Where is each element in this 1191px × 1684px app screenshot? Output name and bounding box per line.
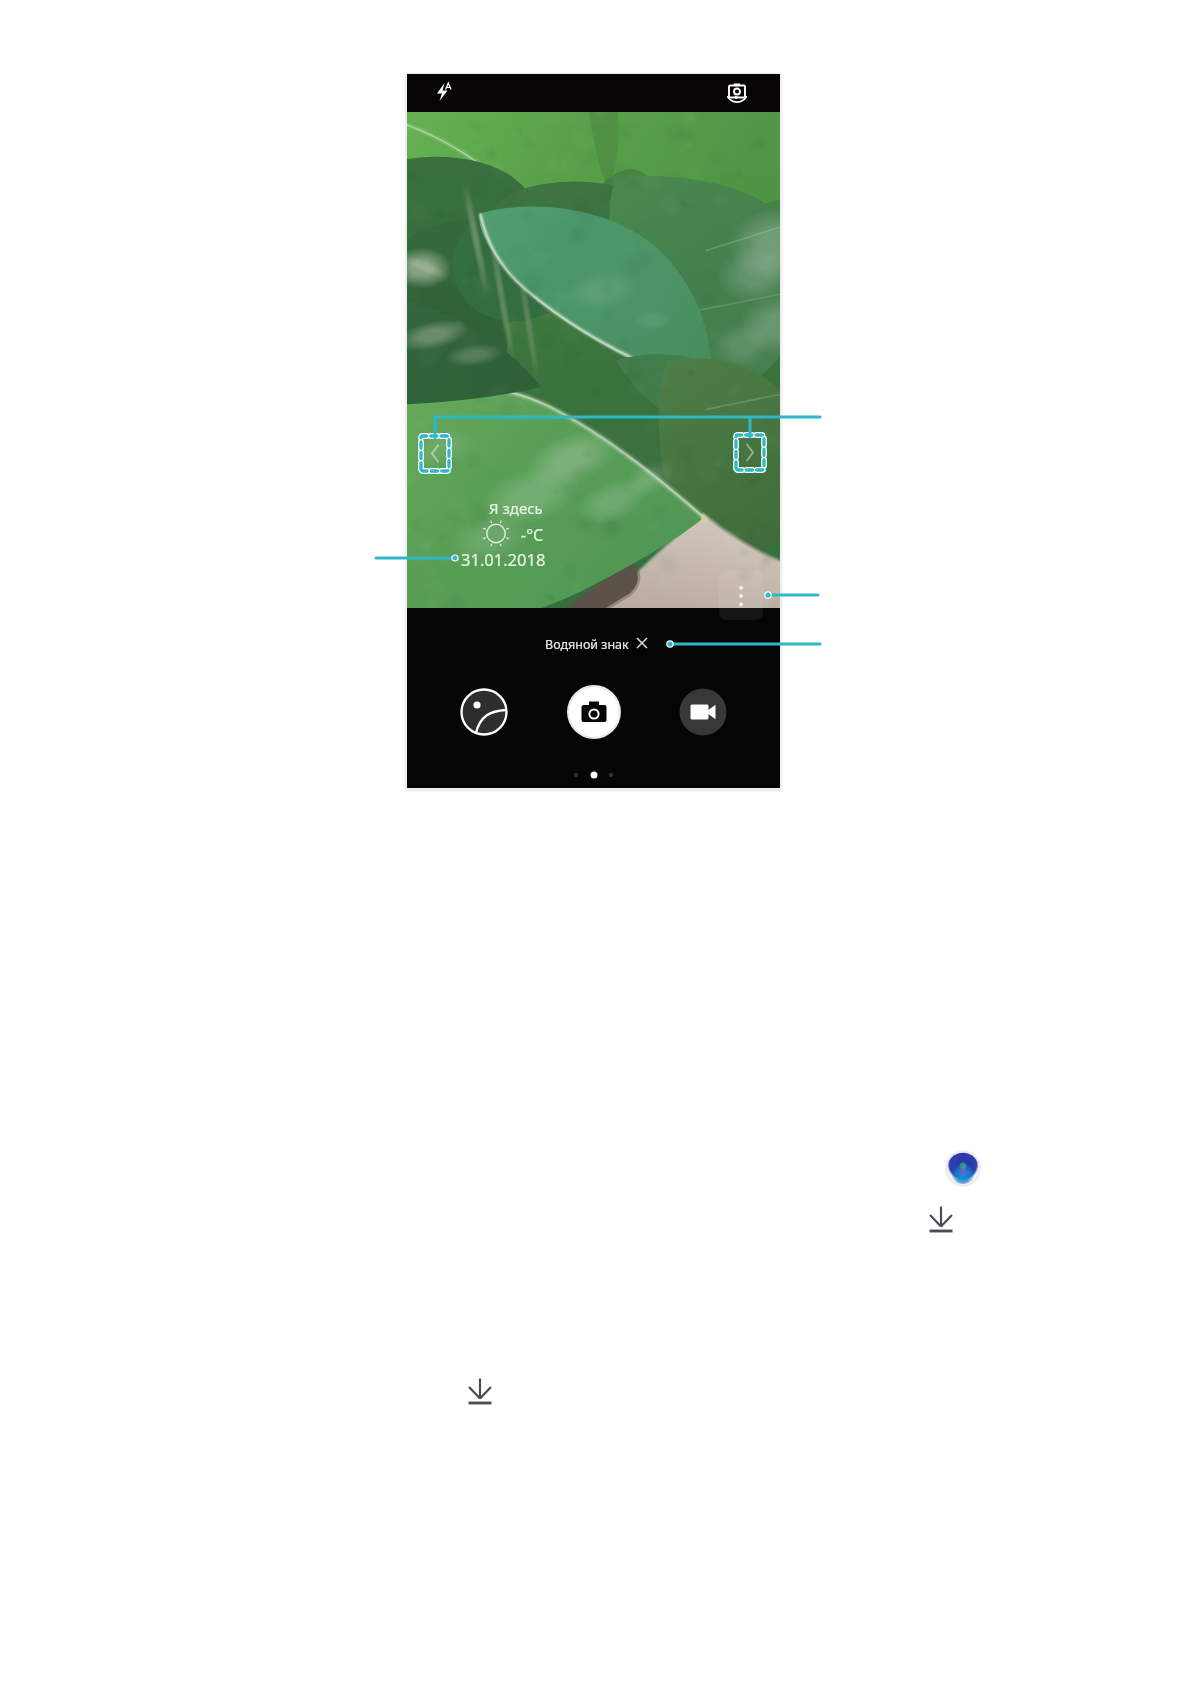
button[interactable]: Record video: [679, 688, 727, 736]
button[interactable]: Download: [925, 1202, 957, 1236]
button[interactable]: Camera modes: [566, 766, 622, 784]
button[interactable]: Move watermark right: [736, 435, 765, 471]
button[interactable]: Flash auto: [425, 75, 461, 111]
button[interactable]: Move watermark left: [421, 436, 450, 472]
button[interactable]: Take photo: [566, 684, 622, 740]
button[interactable]: Open gallery: [460, 688, 508, 736]
button[interactable]: Водяной знак: [540, 630, 652, 656]
button[interactable]: Switch camera: [719, 75, 755, 111]
button[interactable]: Download: [464, 1374, 496, 1408]
button[interactable]: More options: [719, 570, 763, 620]
button[interactable]: App icon: [948, 1154, 978, 1184]
